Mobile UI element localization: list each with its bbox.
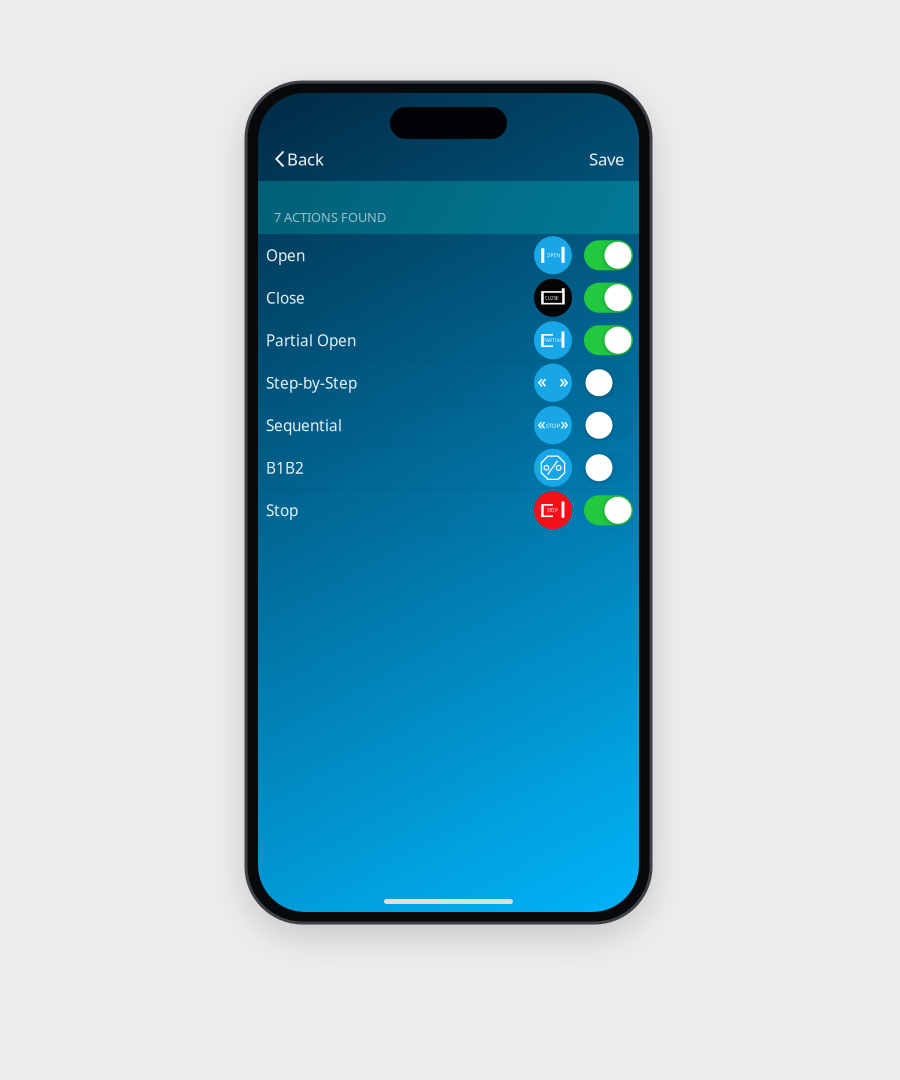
- button[interactable]: Close: [258, 276, 639, 319]
- staticText: OPEN: [546, 252, 559, 259]
- staticText: 7 ACTIONS FOUND: [274, 208, 386, 226]
- staticText: STOP: [545, 421, 560, 429]
- staticText: Sequential: [266, 415, 342, 436]
- staticText: CLOSE: [545, 295, 559, 301]
- staticText: Close: [266, 287, 305, 308]
- staticText: Stop: [266, 500, 298, 521]
- staticText: Partial Open: [266, 330, 356, 351]
- button[interactable]: Back: [270, 139, 329, 179]
- button[interactable]: B1B2: [258, 446, 639, 489]
- staticText: STOP: [547, 507, 558, 514]
- button[interactable]: Sequential: [258, 404, 639, 446]
- button[interactable]: Open: [258, 234, 639, 276]
- staticText: Open: [266, 245, 305, 266]
- staticText: Save: [589, 148, 624, 170]
- button[interactable]: Save: [584, 139, 629, 179]
- button[interactable]: Stop: [258, 489, 639, 531]
- staticText: Back: [287, 148, 324, 170]
- staticText: Step-by-Step: [266, 372, 357, 393]
- button[interactable]: Step-by-Step: [258, 361, 639, 404]
- button[interactable]: Partial Open: [258, 319, 639, 361]
- staticText: PARTIAL: [543, 337, 562, 344]
- staticText: B1B2: [266, 457, 304, 478]
